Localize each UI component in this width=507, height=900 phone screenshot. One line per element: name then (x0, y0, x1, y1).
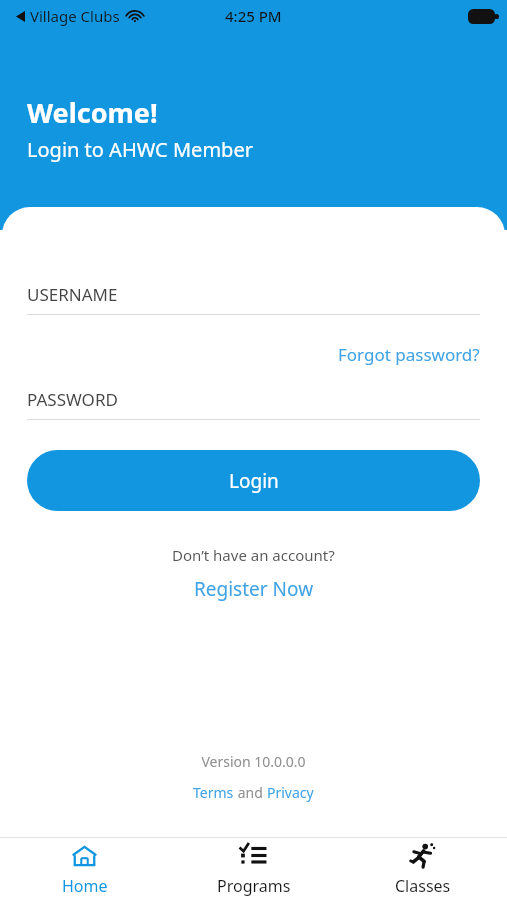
staticText: USERNAME (27, 283, 118, 306)
staticText: Login (229, 468, 279, 494)
button[interactable]: Terms (193, 783, 234, 802)
button[interactable]: Home (0, 838, 169, 900)
button[interactable]: PASSWORD (27, 388, 480, 420)
staticText: Welcome! (27, 94, 158, 131)
button[interactable]: USERNAME (27, 283, 480, 315)
staticText: Forgot password? (338, 343, 480, 366)
staticText: Home (62, 875, 108, 897)
button[interactable]: Programs (169, 838, 338, 900)
staticText: Privacy (267, 783, 314, 802)
button[interactable]: Privacy (267, 783, 314, 802)
staticText: Classes (395, 875, 451, 897)
staticText: 4:25 PM (225, 6, 282, 26)
staticText: Terms (193, 783, 234, 802)
button[interactable]: Classes (338, 838, 507, 900)
button[interactable]: Forgot password? (338, 343, 480, 366)
staticText: and (234, 783, 267, 802)
staticText: Don’t have an account? (172, 545, 335, 565)
staticText: Village Clubs (30, 6, 120, 26)
staticText: Programs (217, 875, 291, 897)
staticText: Register Now (194, 576, 314, 602)
button[interactable]: Register Now (194, 576, 314, 602)
staticText: Login to AHWC Member (27, 136, 253, 163)
staticText: PASSWORD (27, 388, 118, 411)
button[interactable]: Login (27, 450, 480, 511)
staticText: Version 10.0.0.0 (201, 752, 306, 771)
